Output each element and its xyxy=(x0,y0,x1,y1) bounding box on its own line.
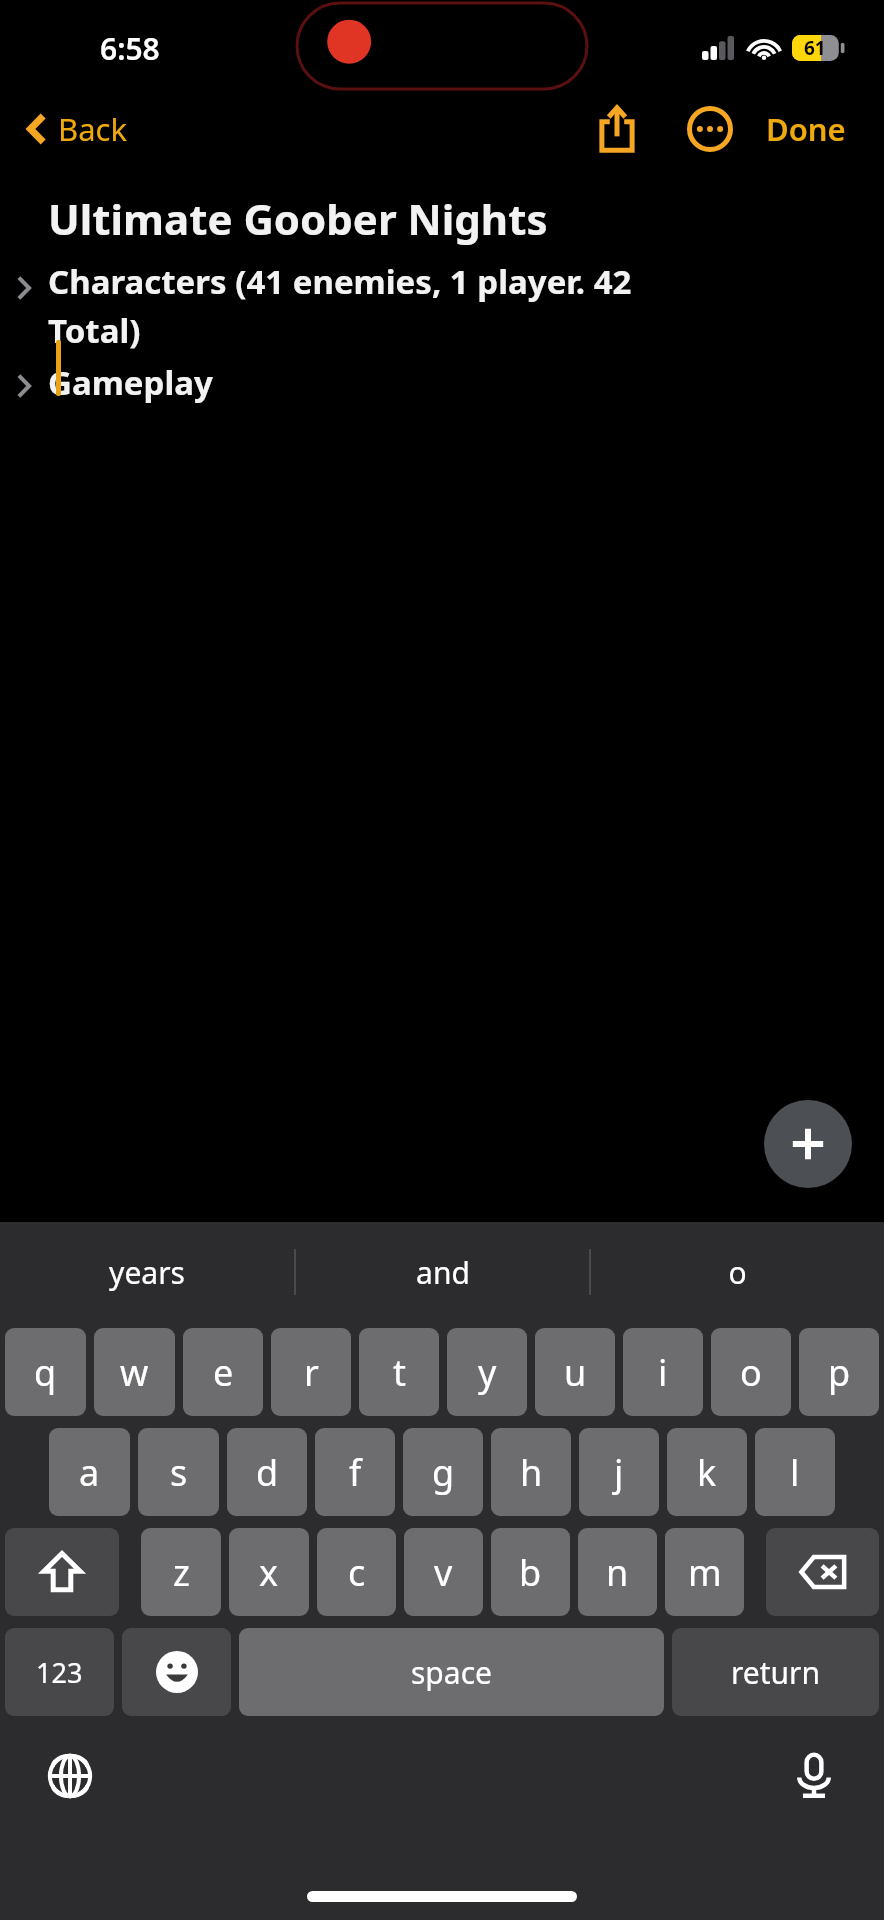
button[interactable]: 123 xyxy=(5,1628,114,1716)
button[interactable]: Share xyxy=(582,100,652,158)
button[interactable]: return xyxy=(672,1628,879,1716)
button[interactable]: d xyxy=(227,1428,307,1516)
staticText: p xyxy=(828,1348,851,1397)
button[interactable]: g xyxy=(403,1428,483,1516)
staticText: c xyxy=(348,1548,366,1597)
staticText: a xyxy=(79,1448,100,1497)
staticText: o xyxy=(728,1252,747,1293)
staticText: l xyxy=(790,1448,800,1497)
staticText: x xyxy=(259,1548,279,1597)
staticText: 123 xyxy=(36,1654,83,1691)
staticText: j xyxy=(614,1448,624,1497)
button[interactable]: Done xyxy=(758,100,854,158)
staticText: u xyxy=(564,1348,587,1397)
staticText: Characters (41 enemies, 1 player. 42 Tot… xyxy=(48,259,632,352)
button[interactable]: t xyxy=(359,1328,439,1416)
button[interactable]: Shift xyxy=(5,1528,119,1616)
button[interactable]: a xyxy=(49,1428,130,1516)
staticText: w xyxy=(120,1348,149,1397)
button[interactable]: o xyxy=(591,1222,884,1322)
staticText: z xyxy=(173,1548,190,1597)
staticText: 6:58 xyxy=(100,28,160,69)
button[interactable]: space xyxy=(239,1628,664,1716)
staticText: space xyxy=(411,1652,492,1693)
button[interactable]: m xyxy=(665,1528,744,1616)
button[interactable]: q xyxy=(5,1328,86,1416)
staticText: m xyxy=(688,1548,722,1597)
staticText: d xyxy=(256,1448,279,1497)
button[interactable]: and xyxy=(296,1222,589,1322)
button[interactable]: Emoji xyxy=(122,1628,231,1716)
staticText: i xyxy=(658,1348,668,1397)
button[interactable]: o xyxy=(711,1328,791,1416)
button[interactable]: Backspace xyxy=(766,1528,879,1616)
staticText: y xyxy=(478,1348,497,1397)
staticText: and xyxy=(416,1252,470,1293)
button[interactable]: c xyxy=(317,1528,396,1616)
button[interactable]: k xyxy=(667,1428,747,1516)
staticText: r xyxy=(304,1348,319,1397)
staticText: t xyxy=(393,1348,406,1397)
staticText: o xyxy=(740,1348,762,1397)
button[interactable]: w xyxy=(94,1328,175,1416)
staticText: k xyxy=(697,1448,717,1497)
button[interactable]: e xyxy=(183,1328,263,1416)
staticText: 61 xyxy=(804,35,826,61)
staticText: g xyxy=(432,1448,455,1497)
staticText: return xyxy=(731,1652,821,1693)
button[interactable]: Add xyxy=(764,1100,852,1188)
button[interactable]: Characters (41 enemies, 1 player. 42 Tot… xyxy=(0,259,884,352)
staticText: q xyxy=(34,1348,57,1397)
button[interactable]: Dictate xyxy=(774,1736,854,1816)
button[interactable]: p xyxy=(799,1328,879,1416)
staticText: Ultimate Goober Nights xyxy=(48,190,548,247)
button[interactable]: b xyxy=(491,1528,570,1616)
button[interactable]: l xyxy=(755,1428,835,1516)
button[interactable]: Back xyxy=(18,102,135,156)
staticText: Back xyxy=(58,108,127,150)
button[interactable]: h xyxy=(491,1428,571,1516)
staticText: years xyxy=(109,1252,185,1293)
button[interactable]: j xyxy=(579,1428,659,1516)
button[interactable]: f xyxy=(315,1428,395,1516)
staticText: v xyxy=(434,1548,453,1597)
button[interactable]: years xyxy=(0,1222,294,1322)
button[interactable]: n xyxy=(578,1528,657,1616)
button[interactable]: x xyxy=(229,1528,309,1616)
button[interactable]: u xyxy=(535,1328,615,1416)
staticText: n xyxy=(606,1548,629,1597)
button[interactable]: More options xyxy=(678,97,742,161)
button[interactable]: z xyxy=(141,1528,221,1616)
staticText: f xyxy=(349,1448,362,1497)
button[interactable]: s xyxy=(138,1428,219,1516)
staticText: s xyxy=(170,1448,188,1497)
button[interactable]: r xyxy=(271,1328,351,1416)
button[interactable]: i xyxy=(623,1328,703,1416)
button[interactable]: y xyxy=(447,1328,527,1416)
button[interactable]: Gameplay xyxy=(0,360,884,412)
staticText: Done xyxy=(766,108,846,150)
button[interactable]: Change keyboard xyxy=(30,1736,110,1816)
staticText: b xyxy=(519,1548,542,1597)
staticText: Gameplay xyxy=(48,360,213,405)
staticText: h xyxy=(520,1448,543,1497)
button[interactable]: v xyxy=(404,1528,483,1616)
staticText: e xyxy=(213,1348,234,1397)
